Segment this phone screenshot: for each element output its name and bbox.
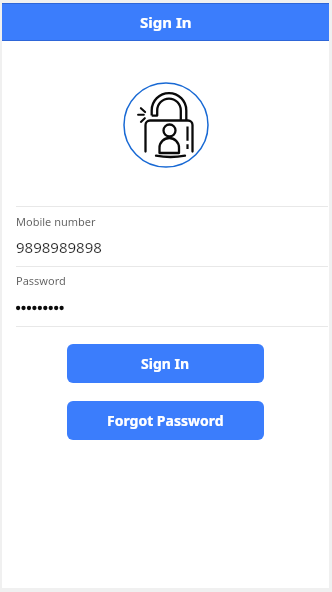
- button[interactable]: Sign In: [2, 3, 329, 41]
- staticText: Mobile number: [16, 214, 96, 229]
- staticText: Password: [16, 273, 66, 288]
- other: Secure sign in: [123, 82, 209, 168]
- staticText: Forgot Password: [107, 411, 224, 430]
- staticText: Sign In: [140, 12, 192, 32]
- staticText: Sign In: [141, 354, 190, 373]
- staticText: 9898989898: [16, 237, 102, 257]
- button[interactable]: Sign In: [67, 344, 264, 383]
- button[interactable]: Mobile number: [2, 207, 329, 266]
- button[interactable]: Forgot Password: [67, 401, 264, 440]
- button[interactable]: Password: [2, 267, 329, 326]
